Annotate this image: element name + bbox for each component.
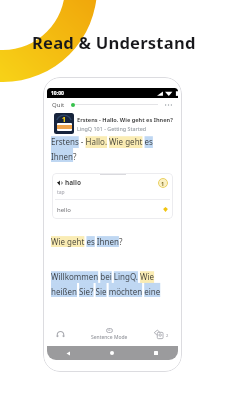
button[interactable]: More options (164, 103, 173, 107)
button[interactable]: Home (90, 346, 134, 360)
other: Favorite (163, 207, 168, 212)
button[interactable]: Quit (52, 101, 65, 109)
staticText: 1 (62, 115, 67, 125)
staticText: tap (57, 189, 65, 196)
staticText: 10:00 (51, 90, 64, 97)
staticText: hello (57, 206, 71, 214)
staticText: Willkommen bei LingQ. Wie heißen Sie? Si… (51, 271, 174, 297)
staticText: Read & Understand (32, 31, 196, 54)
button[interactable]: Recents (134, 346, 178, 360)
staticText: 1 (161, 180, 165, 187)
button[interactable]: Audio (47, 322, 74, 346)
staticText: Sentence Mode (91, 334, 128, 341)
button[interactable]: 1 (54, 111, 174, 136)
other: Play audio (57, 180, 63, 186)
staticText: Quit (52, 101, 65, 109)
button[interactable]: Back (47, 346, 90, 360)
staticText: hallo (65, 178, 82, 187)
staticText: Wie geht es Ihnen? (51, 236, 123, 247)
staticText: LingQ 101 - Getting Started (77, 125, 147, 132)
staticText: 2 (166, 333, 169, 338)
button[interactable]: Sentence Mode (74, 322, 144, 346)
staticText: Erstens - Hallo. Wie geht es Ihnen? (77, 116, 173, 124)
button[interactable]: Play audio (52, 173, 173, 219)
staticText: Erstens - Hallo. Wie geht es Ihnen? (51, 136, 174, 162)
button[interactable]: Flashcards (144, 322, 178, 346)
